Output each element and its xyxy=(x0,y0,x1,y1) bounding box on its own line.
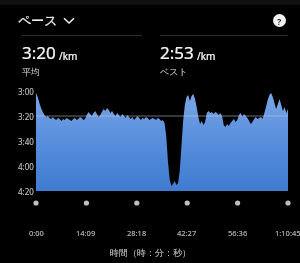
button[interactable]: ペース xyxy=(14,8,78,32)
staticText: 14:09 xyxy=(76,228,96,238)
staticText: /km xyxy=(59,49,78,63)
staticText: 0:00 xyxy=(29,228,44,238)
staticText: ベスト xyxy=(160,66,188,77)
staticText: 1:10:45 xyxy=(275,228,300,238)
staticText: 3:00 xyxy=(18,86,34,97)
button[interactable]: ヘルプ xyxy=(268,9,290,31)
staticText: 4:00 xyxy=(18,161,34,172)
staticText: 2:53 xyxy=(160,41,194,64)
staticText: 時間（時：分：秒） xyxy=(110,247,191,258)
staticText: ? xyxy=(277,15,282,27)
staticText: 3:20 xyxy=(18,111,34,122)
staticText: 56:36 xyxy=(228,228,248,238)
staticText: /km xyxy=(197,49,216,63)
staticText: 平均 xyxy=(22,66,40,77)
staticText: 4:20 xyxy=(18,186,34,197)
staticText: ペース xyxy=(18,12,58,28)
staticText: 3:40 xyxy=(18,136,34,147)
staticText: 28:18 xyxy=(127,228,147,238)
staticText: 42:27 xyxy=(177,228,197,238)
staticText: 3:20 xyxy=(22,41,56,64)
